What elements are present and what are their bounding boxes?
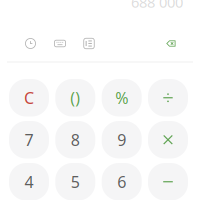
button[interactable]: () (55, 79, 95, 116)
button[interactable]: Calculator (82, 36, 96, 50)
staticText: 688 000 (131, 0, 183, 12)
button[interactable]: 8 (55, 121, 95, 158)
staticText: () (70, 87, 80, 108)
staticText: 8 (71, 129, 80, 150)
staticText: % (115, 87, 128, 108)
button[interactable]: 5 (55, 163, 95, 200)
staticText: 6 (117, 171, 126, 192)
staticText: 7 (24, 129, 33, 150)
button[interactable] (148, 163, 188, 200)
button[interactable]: C (9, 79, 49, 116)
button[interactable]: History (23, 36, 37, 50)
button[interactable]: % (102, 79, 142, 116)
button[interactable]: 6 (102, 163, 142, 200)
button[interactable]: Keyboard (53, 36, 67, 50)
button[interactable] (148, 121, 188, 158)
staticText: C (24, 87, 34, 108)
button[interactable]: 9 (102, 121, 142, 158)
button[interactable]: Delete (164, 37, 178, 49)
button[interactable] (148, 79, 188, 116)
button[interactable]: 4 (9, 163, 49, 200)
staticText: 4 (24, 171, 33, 192)
staticText: 9 (117, 129, 126, 150)
button[interactable]: 7 (9, 121, 49, 158)
staticText: 5 (71, 171, 80, 192)
